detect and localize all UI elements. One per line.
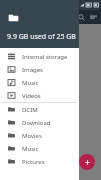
staticText: Videos [22, 92, 41, 100]
staticText: Music [22, 145, 39, 153]
button[interactable]: Music [0, 76, 79, 89]
button[interactable]: Search [75, 11, 87, 23]
button[interactable]: More options [89, 11, 98, 23]
button[interactable]: Music [0, 142, 79, 155]
staticText: Internal storage [22, 53, 68, 61]
button[interactable]: Movies [0, 129, 79, 142]
button[interactable]: 9.9 GB used of 25 GB [0, 0, 79, 48]
staticText: Music [22, 79, 39, 87]
button[interactable]: Download [0, 116, 79, 129]
staticText: 9.9 GB used of 25 GB [7, 32, 76, 42]
staticText: Movies [22, 132, 42, 140]
button[interactable]: Videos [0, 89, 79, 102]
staticText: Download [22, 119, 51, 127]
button[interactable]: DCIM [0, 103, 79, 116]
staticText: Pictures [22, 158, 45, 166]
staticText: DCIM [22, 106, 38, 114]
staticText: Images [22, 66, 43, 74]
button[interactable]: Internal storage [0, 50, 79, 63]
button[interactable]: Pictures [0, 155, 79, 168]
button[interactable]: Images [0, 63, 79, 76]
button[interactable]: Add [79, 154, 95, 170]
